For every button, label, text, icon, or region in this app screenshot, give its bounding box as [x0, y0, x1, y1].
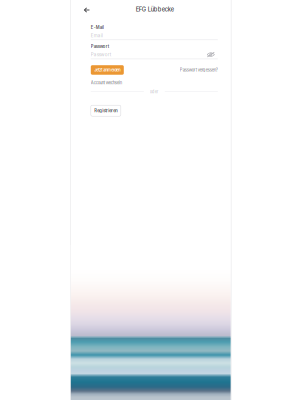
staticText: Account wechseln — [91, 80, 122, 85]
staticText: Passwort — [91, 52, 111, 57]
staticText: Passwort — [91, 44, 109, 49]
button[interactable]: Registrieren — [91, 105, 121, 116]
staticText: Jetzt anmelden — [94, 67, 120, 72]
staticText: EFG Lübbecke — [136, 6, 174, 13]
staticText: oder — [150, 89, 159, 94]
staticText: Email — [91, 33, 103, 38]
button[interactable]: Account wechseln — [91, 80, 122, 85]
staticText: E-Mail — [91, 25, 104, 30]
button[interactable]: Back — [80, 2, 94, 18]
button[interactable]: Jetzt anmelden — [91, 65, 124, 75]
staticText: Passwort vergessen? — [180, 67, 218, 72]
staticText: Registrieren — [94, 108, 117, 113]
button[interactable]: Passwort vergessen? — [180, 67, 218, 72]
